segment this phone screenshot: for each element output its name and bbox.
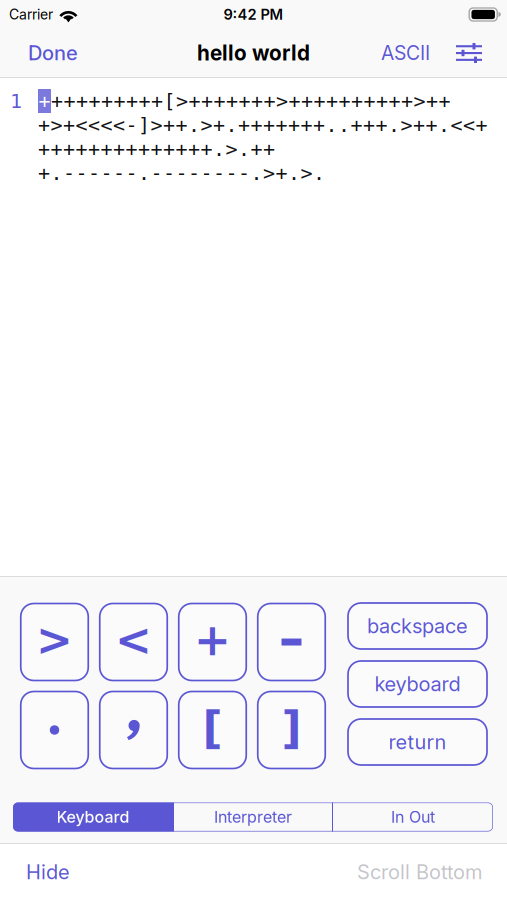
button[interactable]: Editor settings — [443, 29, 507, 77]
button[interactable]: < — [100, 603, 167, 680]
button[interactable]: Interpreter — [174, 802, 332, 831]
button[interactable]: Done — [0, 29, 92, 77]
button[interactable] — [100, 691, 167, 768]
staticText: +.------.--------.>+.>. — [38, 161, 325, 185]
staticText: ] — [281, 702, 301, 754]
staticText: Scroll Bottom — [357, 860, 482, 884]
button[interactable]: ASCII — [368, 29, 443, 77]
button[interactable]: [ — [179, 691, 246, 768]
staticText: +++++++++[>+++++++>++++++++++>++ — [51, 89, 450, 113]
staticText: backspace — [367, 614, 468, 638]
staticText: keyboard — [374, 672, 460, 696]
staticText: +>+<<<<-]>++.>+.+++++++..+++.>++.<<+ — [38, 113, 487, 137]
staticText: + — [194, 614, 231, 666]
staticText: Done — [28, 41, 78, 65]
staticText: Carrier — [9, 6, 53, 23]
button[interactable] — [21, 691, 88, 768]
staticText: hello world — [197, 40, 310, 65]
button[interactable] — [258, 603, 325, 680]
staticText: ASCII — [381, 41, 430, 65]
staticText: Interpreter — [214, 807, 292, 827]
button[interactable]: + — [179, 603, 246, 680]
button[interactable]: Scroll Bottom — [337, 844, 507, 900]
staticText: In Out — [391, 807, 435, 827]
staticText: Hide — [26, 860, 70, 884]
staticText: ++++++++++++++.>.++ — [38, 137, 275, 161]
staticText: < — [115, 614, 152, 666]
staticText: + — [38, 89, 50, 113]
button[interactable]: Hide — [0, 844, 90, 900]
button[interactable]: ] — [258, 691, 325, 768]
button[interactable]: backspace — [348, 603, 487, 649]
staticText: 1 — [10, 89, 22, 113]
button[interactable]: In Out — [333, 802, 493, 831]
staticText: return — [388, 730, 446, 754]
button[interactable]: keyboard — [348, 661, 487, 707]
staticText: 9:42 PM — [223, 6, 283, 23]
staticText: Keyboard — [56, 807, 129, 827]
staticText: [ — [202, 702, 222, 754]
button[interactable]: Keyboard — [13, 802, 173, 831]
staticText: > — [36, 614, 73, 666]
button[interactable]: return — [348, 719, 487, 765]
button[interactable]: > — [21, 603, 88, 680]
